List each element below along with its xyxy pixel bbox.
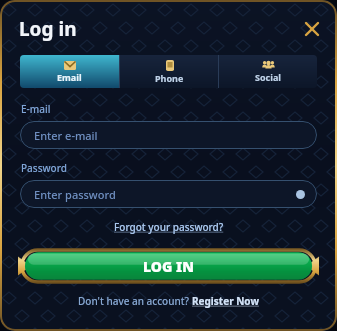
button[interactable]: Forgot your password?	[111, 217, 227, 237]
other: Show password	[296, 190, 305, 199]
staticText: Don't have an account?	[78, 294, 192, 308]
button[interactable]: Enter password	[20, 180, 317, 208]
staticText: Register Now	[192, 294, 259, 308]
staticText: Password	[21, 161, 67, 175]
staticText: Phone	[155, 72, 184, 84]
staticText: Forgot your password?	[114, 220, 224, 234]
staticText: E-mail	[21, 102, 51, 116]
button[interactable]: Enter e-mail	[20, 121, 317, 149]
staticText: Social	[255, 71, 281, 83]
button[interactable]: LOG IN	[18, 249, 319, 283]
staticText: Enter e-mail	[34, 128, 98, 143]
button[interactable]: Phone	[120, 55, 218, 88]
staticText: Email	[57, 71, 82, 83]
button[interactable]: Social	[219, 55, 317, 88]
button[interactable]: Close	[297, 14, 327, 44]
staticText: Enter password	[34, 187, 116, 202]
button[interactable]: Email	[20, 55, 119, 88]
staticText: LOG IN	[143, 257, 194, 276]
button[interactable]: Register Now	[192, 294, 259, 308]
staticText: Log in	[19, 16, 77, 42]
